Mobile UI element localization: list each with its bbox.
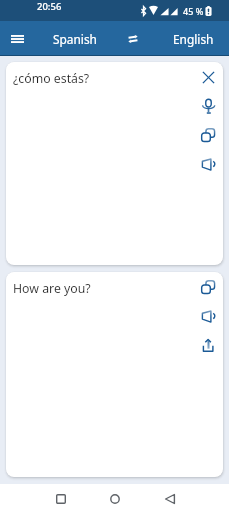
button[interactable]: Copy <box>194 273 222 302</box>
button[interactable]: Recents <box>47 484 75 512</box>
button[interactable]: Share <box>194 331 222 360</box>
button[interactable]: Copy <box>194 121 222 150</box>
staticText: How are you? <box>13 280 91 297</box>
staticText: 20:56 <box>37 0 62 13</box>
button[interactable]: Clear text <box>194 63 222 92</box>
button[interactable]: Listen <box>194 150 222 179</box>
staticText: ¿cómo estás? <box>13 70 90 87</box>
button[interactable]: Listen <box>194 302 222 331</box>
button[interactable]: Home <box>101 484 129 512</box>
staticText: 45 % <box>183 5 204 17</box>
button[interactable]: Menu <box>0 21 36 56</box>
button[interactable]: English <box>156 21 229 56</box>
staticText: English <box>173 31 214 47</box>
button[interactable]: Swap languages <box>109 21 156 56</box>
staticText: Spanish <box>53 31 97 47</box>
button[interactable]: Voice input <box>194 92 222 121</box>
button[interactable]: Spanish <box>36 21 109 56</box>
button[interactable]: Back <box>156 484 184 512</box>
